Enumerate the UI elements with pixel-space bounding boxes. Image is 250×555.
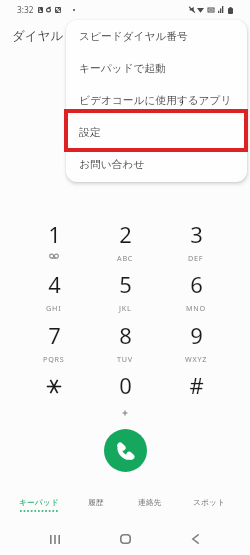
staticText: 5 [119, 269, 132, 299]
button[interactable]: お問い合わせ [66, 148, 247, 180]
button[interactable]: 設定 [66, 116, 247, 148]
button[interactable]: ビデオコールに使用するアプリ [66, 84, 247, 116]
staticText: GHI [46, 303, 62, 313]
button[interactable]: # [163, 367, 229, 415]
staticText: スポット [193, 497, 225, 507]
staticText: 1 [48, 219, 61, 249]
button[interactable]: 5 [92, 266, 158, 314]
staticText: 2 [119, 219, 132, 249]
button[interactable]: キーパッドで起動 [66, 52, 247, 84]
staticText: ビデオコールに使用するアプリ [79, 94, 232, 107]
staticText: 0 [119, 370, 132, 400]
button[interactable]: キーパッド [11, 492, 67, 512]
button[interactable]: スポット [181, 492, 237, 512]
staticText: 9 [190, 320, 203, 350]
button[interactable]: 6 [163, 266, 229, 314]
staticText: TUV [117, 354, 133, 364]
staticText: 連絡先 [138, 497, 162, 507]
button[interactable]: Call [104, 429, 147, 472]
staticText: お問い合わせ [79, 158, 145, 171]
staticText: 7 [48, 320, 61, 350]
button[interactable] [21, 367, 87, 415]
button[interactable]: 9 [163, 317, 229, 365]
button[interactable]: Recents [35, 521, 75, 555]
staticText: 6 [190, 269, 203, 299]
button[interactable]: 1 [21, 216, 87, 264]
button[interactable]: 0 [92, 367, 158, 415]
staticText: 3 [190, 219, 203, 249]
button[interactable]: 連絡先 [122, 492, 178, 512]
button[interactable]: 3 [163, 216, 229, 264]
staticText: DEF [188, 253, 204, 263]
button[interactable]: Back [175, 521, 215, 555]
button[interactable]: 7 [21, 317, 87, 365]
button[interactable]: 4 [21, 266, 87, 314]
staticText: 設定 [79, 126, 101, 139]
staticText: JKL [119, 303, 132, 313]
staticText: キーパッド [19, 497, 59, 507]
staticText: 4 [48, 269, 61, 299]
staticText: ダイヤル [12, 28, 64, 44]
staticText: WXYZ [185, 354, 208, 364]
button[interactable]: 2 [92, 216, 158, 264]
button[interactable]: 8 [92, 317, 158, 365]
staticText: 3:32 [17, 4, 34, 15]
button[interactable]: Home [105, 521, 145, 555]
staticText: キーパッドで起動 [79, 62, 166, 75]
staticText: 履歴 [88, 497, 104, 507]
button[interactable]: 履歴 [68, 492, 124, 512]
staticText: 8 [119, 320, 132, 350]
staticText: MNO [186, 303, 206, 313]
staticText: スピードダイヤル番号 [79, 30, 188, 43]
button[interactable]: スピードダイヤル番号 [66, 20, 247, 52]
staticText: ABC [117, 253, 134, 263]
staticText: PQRS [43, 354, 65, 364]
staticText: # [189, 370, 204, 400]
